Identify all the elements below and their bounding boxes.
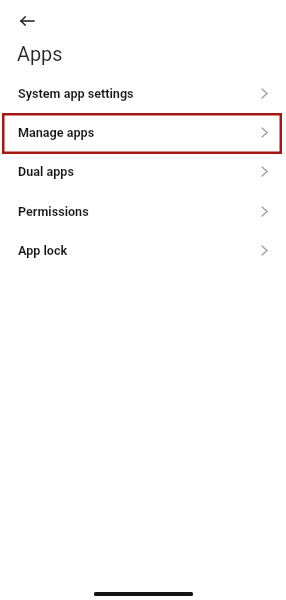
button[interactable]: System app settings xyxy=(0,74,286,113)
button[interactable]: App lock xyxy=(0,231,286,270)
staticText: System app settings xyxy=(18,86,134,101)
staticText: Apps xyxy=(17,43,63,66)
staticText: Permissions xyxy=(18,204,89,219)
button[interactable]: Back xyxy=(11,11,45,31)
staticText: Manage apps xyxy=(18,125,95,140)
staticText: App lock xyxy=(18,243,68,258)
button[interactable]: Manage apps xyxy=(0,113,286,152)
staticText: Dual apps xyxy=(18,164,74,179)
button[interactable]: Permissions xyxy=(0,192,286,231)
button[interactable]: Dual apps xyxy=(0,152,286,191)
